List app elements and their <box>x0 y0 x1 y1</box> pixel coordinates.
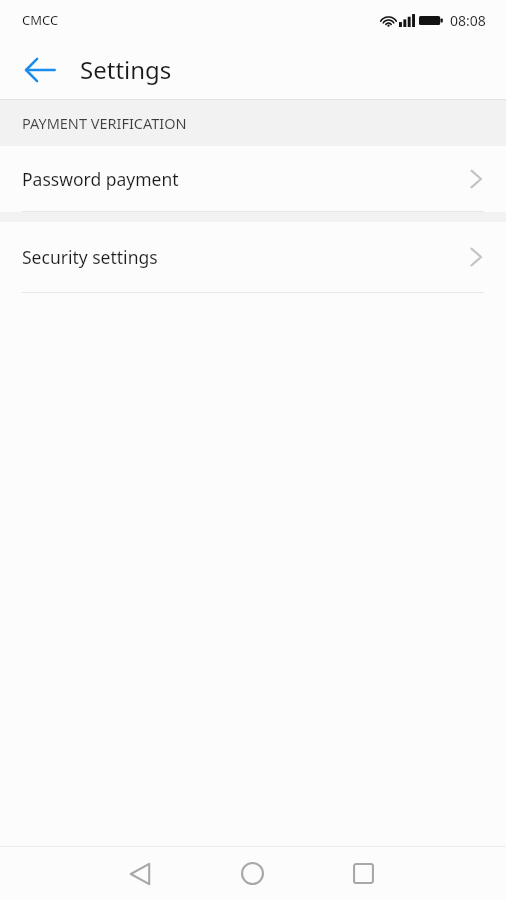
button[interactable]: Home <box>224 847 280 900</box>
button[interactable]: Back <box>14 44 66 96</box>
staticText: 08:08 <box>450 11 486 30</box>
button[interactable]: Recent apps <box>335 847 391 900</box>
staticText: Password payment <box>22 167 470 191</box>
staticText: Settings <box>80 53 172 86</box>
button[interactable]: Security settings <box>0 222 506 292</box>
staticText: PAYMENT VERIFICATION <box>22 113 187 133</box>
staticText: CMCC <box>22 11 59 29</box>
button[interactable]: Password payment <box>0 146 506 211</box>
staticText: Security settings <box>22 245 470 269</box>
button[interactable]: Back <box>112 847 168 900</box>
